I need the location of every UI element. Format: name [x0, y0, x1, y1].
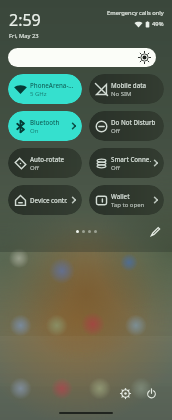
button[interactable]: Device contr.	[8, 185, 82, 215]
button[interactable]: Bluetooth	[8, 111, 82, 141]
staticText: Mobile data	[111, 81, 147, 89]
button[interactable]: Do Not Disturb	[89, 111, 164, 141]
staticText: Smart Conne.	[111, 155, 152, 163]
button[interactable]: PhoneArena-Gu	[8, 74, 82, 104]
button[interactable]: Settings	[118, 386, 132, 400]
staticText: 2:59	[9, 9, 41, 31]
staticText: 49%	[152, 20, 164, 28]
button[interactable]: Smart Conne.	[89, 148, 164, 178]
staticText: No SIM	[111, 90, 132, 98]
staticText: Do Not Disturb	[111, 118, 156, 126]
staticText: Tap to open	[111, 201, 145, 209]
button[interactable]: Brightness	[8, 48, 156, 67]
staticText: Off	[111, 127, 120, 135]
staticText: Off	[30, 164, 39, 172]
staticText: Wallet	[111, 192, 130, 200]
button[interactable]: Edit tiles	[148, 224, 162, 238]
staticText: Off	[111, 164, 120, 172]
staticText: Fri, May 23	[9, 32, 39, 40]
staticText: On	[30, 127, 39, 135]
staticText: Emergency calls only	[107, 9, 164, 17]
button[interactable]: Auto-rotate	[8, 148, 82, 178]
staticText: PhoneArena-Gu	[30, 81, 75, 89]
button[interactable]: Power	[144, 386, 158, 400]
staticText: Bluetooth	[30, 118, 60, 126]
staticText: Device contr.	[30, 196, 68, 204]
staticText: Auto-rotate	[30, 155, 65, 163]
button[interactable]: Wallet	[89, 185, 164, 215]
staticText: 5 GHz	[30, 90, 47, 98]
button[interactable]: Mobile data	[89, 74, 164, 104]
